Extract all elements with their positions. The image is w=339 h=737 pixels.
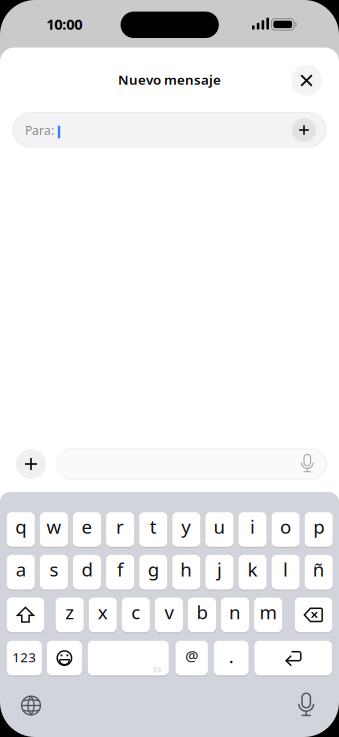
button[interactable]: m bbox=[254, 598, 282, 632]
staticText: m bbox=[260, 599, 277, 624]
staticText: z bbox=[65, 599, 74, 624]
staticText: Nuevo mensaje bbox=[118, 71, 221, 88]
button[interactable]: w bbox=[40, 512, 68, 547]
button[interactable]: Emoji bbox=[47, 641, 82, 675]
button[interactable]: Aplicaciones bbox=[16, 449, 46, 479]
staticText: . bbox=[229, 644, 234, 668]
button[interactable]: k bbox=[238, 555, 266, 589]
staticText: 10:00 bbox=[46, 14, 82, 34]
button[interactable]: g bbox=[139, 555, 167, 589]
button[interactable]: r bbox=[106, 512, 134, 547]
staticText: ES bbox=[153, 665, 161, 674]
button[interactable]: Espacio bbox=[88, 641, 169, 675]
staticText: j bbox=[217, 557, 222, 582]
button[interactable]: f bbox=[106, 555, 134, 589]
button[interactable]: Mayúsculas bbox=[7, 598, 44, 632]
button[interactable]: x bbox=[89, 598, 117, 632]
button[interactable]: ñ bbox=[305, 555, 333, 589]
button[interactable]: . bbox=[214, 641, 249, 675]
button[interactable]: e bbox=[73, 512, 101, 547]
button[interactable]: o bbox=[272, 512, 300, 547]
staticText: l bbox=[283, 557, 288, 582]
button[interactable]: i bbox=[238, 512, 266, 547]
button[interactable]: q bbox=[7, 512, 35, 547]
button[interactable]: Intro bbox=[254, 641, 332, 675]
button[interactable]: Dictar bbox=[295, 452, 319, 476]
staticText: h bbox=[180, 557, 192, 582]
staticText: 123 bbox=[12, 648, 36, 666]
button[interactable]: t bbox=[139, 512, 167, 547]
staticText: n bbox=[229, 599, 241, 624]
staticText: ñ bbox=[313, 557, 325, 582]
button[interactable]: @ bbox=[175, 641, 208, 675]
button[interactable]: b bbox=[188, 598, 216, 632]
button[interactable]: j bbox=[205, 555, 233, 589]
button[interactable]: Añadir contacto bbox=[292, 118, 316, 142]
staticText: c bbox=[131, 599, 140, 624]
staticText: Para: bbox=[25, 122, 54, 138]
button[interactable]: l bbox=[272, 555, 300, 589]
staticText: y bbox=[181, 514, 191, 539]
staticText: b bbox=[196, 599, 207, 624]
staticText: e bbox=[81, 514, 92, 539]
staticText: k bbox=[247, 557, 257, 582]
button[interactable]: Cerrar bbox=[291, 65, 322, 96]
staticText: v bbox=[164, 599, 173, 624]
staticText: i bbox=[250, 514, 255, 539]
button[interactable]: z bbox=[56, 598, 84, 632]
button[interactable]: 123 bbox=[7, 641, 42, 675]
button[interactable]: Siguiente teclado bbox=[19, 693, 43, 717]
staticText: x bbox=[98, 599, 108, 624]
button[interactable]: Dictado bbox=[294, 692, 318, 716]
button[interactable]: h bbox=[172, 555, 200, 589]
button[interactable]: v bbox=[155, 598, 183, 632]
staticText: w bbox=[46, 514, 61, 539]
staticText: r bbox=[116, 514, 124, 539]
button[interactable]: a bbox=[7, 555, 35, 589]
staticText: p bbox=[313, 514, 324, 539]
staticText: g bbox=[148, 557, 159, 582]
staticText: d bbox=[81, 557, 92, 582]
staticText: a bbox=[16, 557, 26, 582]
staticText: u bbox=[213, 514, 225, 539]
button[interactable]: y bbox=[172, 512, 200, 547]
button[interactable]: d bbox=[73, 555, 101, 589]
staticText: s bbox=[49, 557, 58, 582]
button[interactable]: p bbox=[305, 512, 333, 547]
staticText: @ bbox=[185, 646, 198, 665]
staticText: f bbox=[117, 557, 123, 582]
staticText: t bbox=[150, 514, 157, 539]
button[interactable]: s bbox=[40, 555, 68, 589]
button[interactable]: u bbox=[205, 512, 233, 547]
button[interactable]: n bbox=[221, 598, 249, 632]
staticText: q bbox=[15, 514, 26, 539]
button[interactable]: c bbox=[122, 598, 150, 632]
button[interactable]: Borrar bbox=[295, 598, 332, 632]
staticText: o bbox=[280, 514, 291, 539]
